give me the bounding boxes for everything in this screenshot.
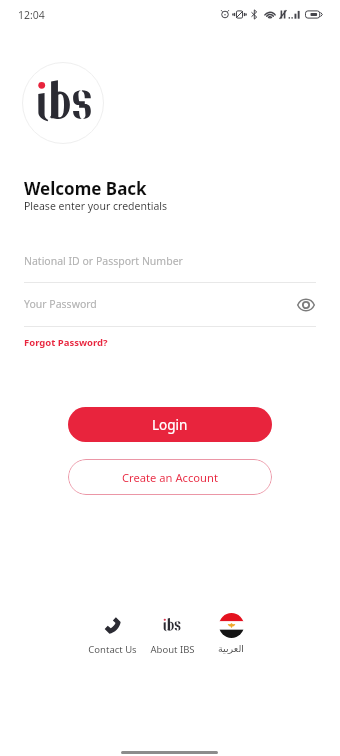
button[interactable]: Contact Us — [82, 610, 142, 656]
button[interactable]: Arabic — [201, 610, 261, 656]
staticText: 12:04 — [18, 8, 45, 22]
staticText: Contact Us — [88, 643, 137, 656]
staticText: العربية — [218, 643, 244, 654]
staticText: Create an Account — [122, 470, 218, 485]
button[interactable]: Login — [68, 407, 272, 442]
staticText: Login — [152, 416, 188, 434]
staticText: About IBS — [150, 643, 195, 656]
staticText: National ID or Passport Number — [24, 254, 183, 268]
button[interactable]: Forgot Password? — [24, 336, 108, 349]
staticText: Please enter your credentials — [24, 199, 168, 213]
other: Contact Us — [104, 617, 121, 634]
staticText: Welcome Back — [24, 177, 147, 200]
button[interactable]: Create an Account — [68, 459, 272, 495]
staticText: Forgot Password? — [24, 336, 108, 349]
other: Arabic — [219, 613, 244, 638]
button[interactable]: Show password — [295, 294, 317, 316]
button[interactable]: About IBS — [142, 610, 202, 656]
staticText: Your Password — [24, 297, 97, 311]
